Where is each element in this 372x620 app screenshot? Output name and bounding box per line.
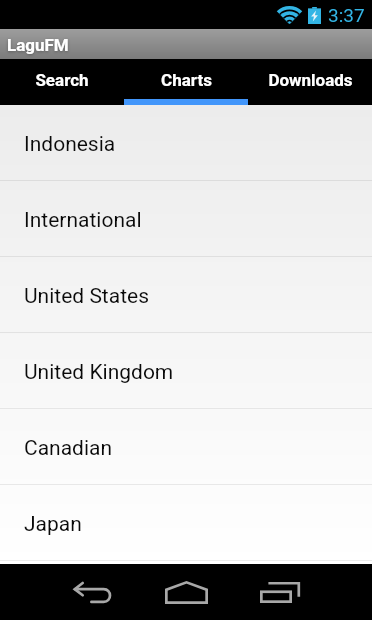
button[interactable]: Indonesia [0,105,372,181]
button[interactable]: United Kingdom [0,333,372,409]
button[interactable]: International [0,181,372,257]
staticText: United Kingdom [24,360,174,385]
button[interactable]: Charts [124,59,248,105]
staticText: 3:37 [328,4,365,26]
button[interactable]: Home [155,564,217,620]
button[interactable]: Canadian [0,409,372,485]
button[interactable]: Downloads [248,59,372,105]
staticText: Search [35,70,89,90]
staticText: Indonesia [24,132,116,157]
button[interactable]: Back [61,564,123,620]
staticText: International [24,208,142,233]
staticText: LaguFM [7,35,69,55]
staticText: Downloads [268,70,353,90]
staticText: Canadian [24,436,113,461]
button[interactable]: Recent apps [249,564,311,620]
button[interactable]: Search [0,59,124,105]
button[interactable]: United States [0,257,372,333]
staticText: Japan [24,512,82,537]
staticText: Charts [161,70,212,90]
button[interactable]: Japan [0,485,372,561]
staticText: United States [24,284,149,309]
